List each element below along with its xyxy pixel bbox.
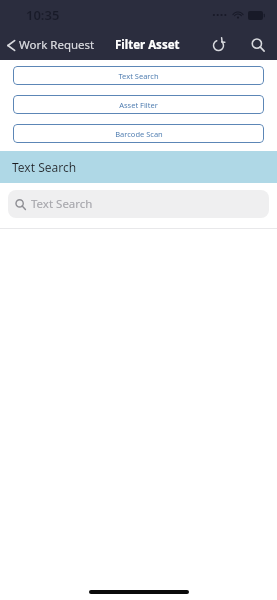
staticText: Text Search xyxy=(31,196,93,212)
staticText: Asset Filter xyxy=(119,100,158,110)
button[interactable]: Text Search xyxy=(8,190,269,218)
button[interactable]: Barcode Scan xyxy=(13,124,264,143)
button[interactable]: Refresh xyxy=(206,33,231,58)
staticText: 10:35 xyxy=(26,6,60,24)
staticText: Text Search xyxy=(12,159,77,175)
button[interactable]: Asset Filter xyxy=(13,95,264,114)
staticText: Barcode Scan xyxy=(115,129,163,139)
staticText: Text Search xyxy=(118,71,159,81)
button[interactable]: Search xyxy=(245,32,271,58)
button[interactable]: Text Search xyxy=(13,66,264,85)
staticText: Filter Asset xyxy=(115,37,180,53)
staticText: Work Request xyxy=(19,37,95,53)
button[interactable]: Work Request xyxy=(0,33,101,57)
